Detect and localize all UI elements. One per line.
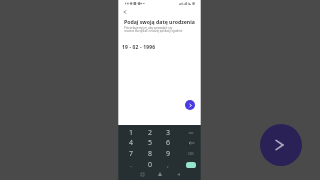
button[interactable]: 8: [141, 148, 159, 159]
staticText: .: [130, 160, 132, 170]
button[interactable]: .: [122, 159, 140, 170]
button[interactable]: 4: [122, 137, 140, 148]
staticText: 7: [129, 149, 134, 159]
button[interactable]: [182, 127, 200, 138]
button[interactable]: 2: [141, 127, 159, 138]
staticText: 0: [148, 160, 153, 170]
button[interactable]: 3: [159, 127, 177, 138]
button[interactable]: Enter: [182, 159, 200, 170]
staticText: OK: [188, 151, 194, 157]
button[interactable]: Continue: [185, 100, 195, 110]
button[interactable]: Next: [260, 124, 302, 166]
button[interactable]: 9: [159, 148, 177, 159]
button[interactable]: OK: [182, 148, 200, 159]
staticText: 3: [166, 128, 171, 138]
button[interactable]: Back: [174, 170, 182, 178]
button[interactable]: 0: [141, 159, 159, 170]
button[interactable]: Back: [122, 9, 128, 15]
staticText: Potrzebujemy jej, aby sprawdzić czy może…: [124, 26, 183, 33]
button[interactable]: 5: [141, 137, 159, 148]
button[interactable]: Recents: [138, 170, 146, 178]
staticText: Podaj swoją datę urodzenia: [124, 18, 195, 25]
staticText: 2: [148, 128, 153, 138]
button[interactable]: 7: [122, 148, 140, 159]
staticText: 5: [148, 138, 153, 148]
staticText: 1: [129, 128, 134, 138]
button[interactable]: [182, 137, 200, 148]
staticText: 6: [166, 138, 171, 148]
button[interactable]: Home: [156, 170, 164, 178]
button[interactable]: 1: [122, 127, 140, 138]
staticText: 19 - 02 - 1996: [122, 44, 156, 51]
staticText: 9: [166, 149, 171, 159]
staticText: ,: [167, 160, 169, 170]
staticText: 4: [129, 138, 134, 148]
button[interactable]: ,: [159, 159, 177, 170]
staticText: 8: [148, 149, 153, 159]
button[interactable]: 6: [159, 137, 177, 148]
other: Enter: [186, 162, 196, 168]
